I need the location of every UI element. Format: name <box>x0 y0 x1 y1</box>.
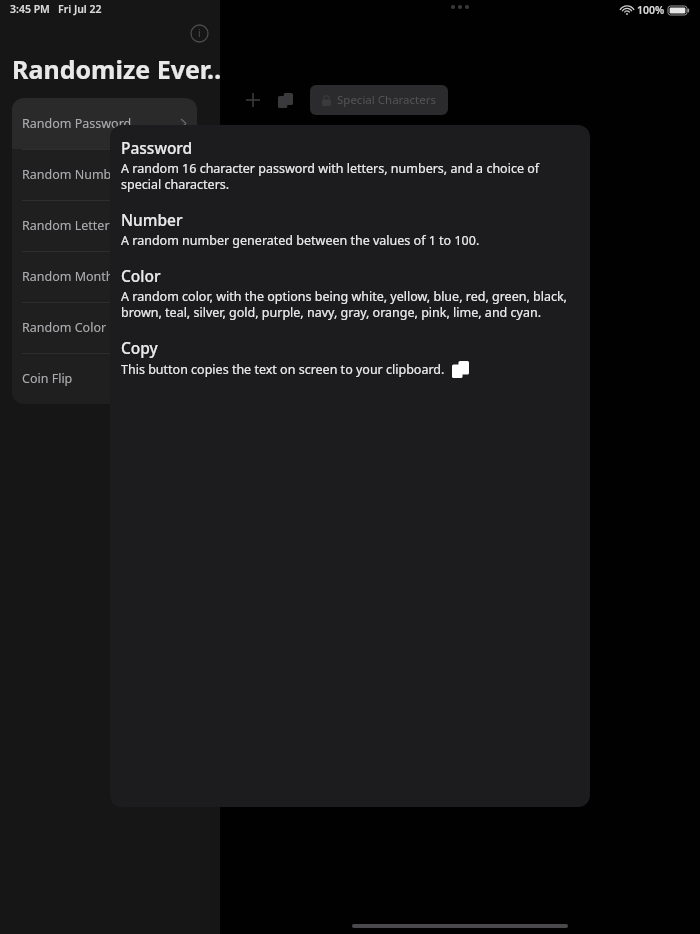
staticText: A random color, with the options being w… <box>121 288 578 321</box>
staticText: Fri Jul 22 <box>58 2 102 16</box>
staticText: 100% <box>637 3 665 17</box>
button[interactable]: Random Month <box>12 251 197 302</box>
button[interactable]: Copy <box>272 87 298 113</box>
button[interactable]: Random Color <box>12 302 197 353</box>
staticText: A random number generated between the va… <box>121 232 480 249</box>
button[interactable]: Information <box>189 23 209 43</box>
staticText: Random Color <box>22 319 107 336</box>
staticText: Coin Flip <box>22 370 73 387</box>
button[interactable]: Add <box>240 87 266 113</box>
staticText: Random Password <box>22 115 132 132</box>
staticText: Color <box>121 265 161 286</box>
staticText: i <box>198 26 201 40</box>
staticText: Randomize Ever… <box>12 52 229 86</box>
staticText: Password <box>121 137 193 158</box>
button[interactable]: Random Letter <box>12 200 197 251</box>
staticText: Special Characters <box>337 92 436 108</box>
button[interactable]: Special Characters <box>310 85 448 115</box>
button[interactable]: Coin Flip <box>12 353 197 404</box>
staticText: Random Month <box>22 268 114 285</box>
staticText: Number <box>121 209 183 230</box>
staticText: Copy <box>121 337 158 358</box>
staticText: 3:45 PM <box>10 2 50 16</box>
staticText: This button copies the text on screen to… <box>121 361 445 378</box>
staticText: Random Number <box>22 166 124 183</box>
staticText: Random Letter <box>22 217 110 234</box>
button[interactable]: Random Password <box>12 98 197 149</box>
button[interactable]: Random Number <box>12 149 197 200</box>
staticText: A random 16 character password with lett… <box>121 160 578 193</box>
